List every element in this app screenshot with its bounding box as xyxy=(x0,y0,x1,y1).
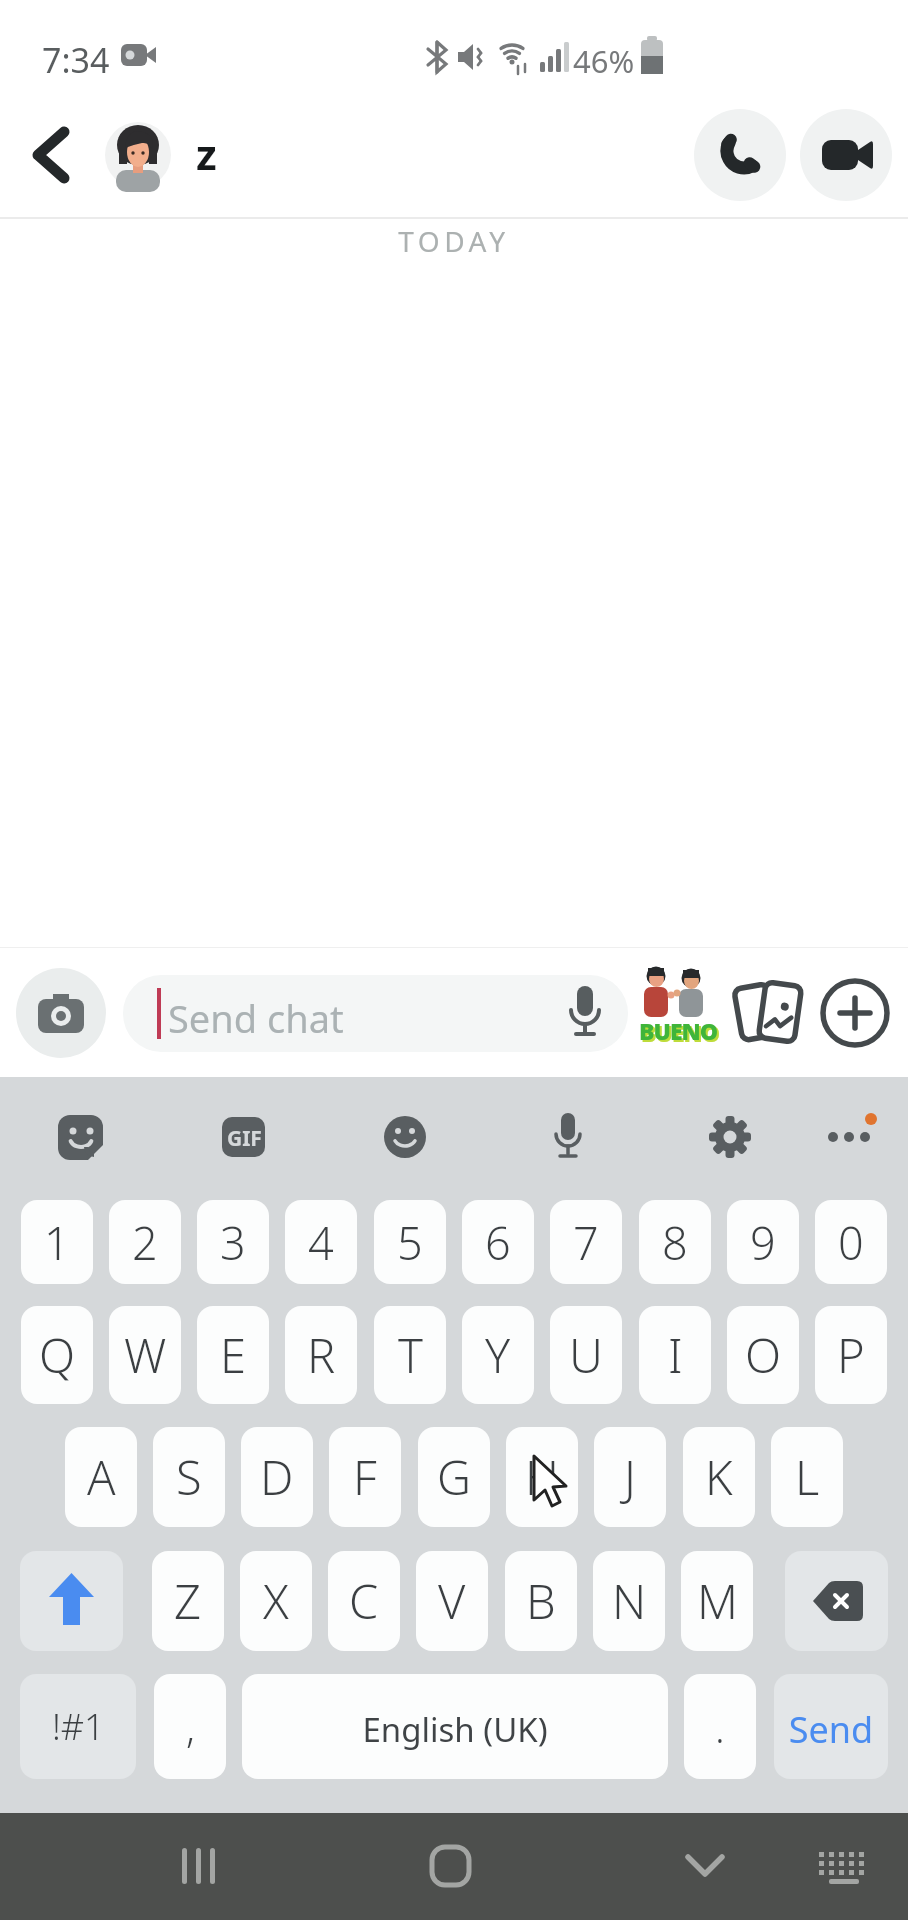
staticText: BUENO xyxy=(641,1017,720,1048)
staticText: I xyxy=(668,1323,683,1387)
staticText: E xyxy=(220,1323,246,1387)
staticText: T xyxy=(398,1323,423,1387)
staticText: BUENO xyxy=(639,1015,718,1046)
staticText: 46% xyxy=(573,40,635,82)
staticText: English (UK) xyxy=(242,1707,668,1752)
staticText: !#1 xyxy=(52,1702,105,1751)
staticText: H xyxy=(525,1445,559,1509)
staticText: Z xyxy=(174,1569,202,1633)
staticText: W xyxy=(124,1323,167,1387)
staticText: J xyxy=(624,1445,636,1509)
staticText: Send chat xyxy=(168,992,344,1044)
staticText: 4 xyxy=(308,1212,334,1273)
staticText: L xyxy=(795,1445,820,1509)
staticText: 0 xyxy=(838,1212,864,1273)
staticText: 3 xyxy=(220,1212,246,1273)
staticText: O xyxy=(745,1323,782,1387)
staticText: 5 xyxy=(397,1212,423,1273)
staticText: B xyxy=(526,1569,556,1633)
staticText: 7:34 xyxy=(42,37,110,83)
staticText: X xyxy=(263,1569,289,1633)
staticText: 7 xyxy=(573,1212,599,1273)
staticText: S xyxy=(176,1445,202,1509)
staticText: D xyxy=(260,1445,294,1509)
staticText: K xyxy=(705,1445,733,1509)
staticText: GIF xyxy=(227,1124,262,1153)
staticText: 8 xyxy=(662,1212,688,1273)
staticText: F xyxy=(353,1445,377,1509)
staticText: A xyxy=(87,1445,116,1509)
staticText: C xyxy=(349,1569,379,1633)
staticText: Q xyxy=(39,1323,76,1387)
staticText: N xyxy=(612,1569,647,1633)
staticText: , xyxy=(186,1700,195,1754)
staticText: G xyxy=(437,1445,472,1509)
staticText: R xyxy=(307,1323,336,1387)
staticText: 9 xyxy=(750,1212,776,1273)
staticText: 6 xyxy=(485,1212,511,1273)
staticText: Y xyxy=(485,1323,511,1387)
staticText: TODAY xyxy=(0,222,908,260)
staticText: V xyxy=(438,1569,466,1633)
staticText: z xyxy=(196,125,217,182)
staticText: 2 xyxy=(132,1212,158,1273)
staticText: . xyxy=(715,1700,725,1754)
staticText: U xyxy=(569,1323,603,1387)
staticText: M xyxy=(697,1569,738,1633)
staticText: Send xyxy=(774,1705,888,1754)
staticText: 1 xyxy=(44,1212,70,1273)
staticText: P xyxy=(837,1323,865,1387)
